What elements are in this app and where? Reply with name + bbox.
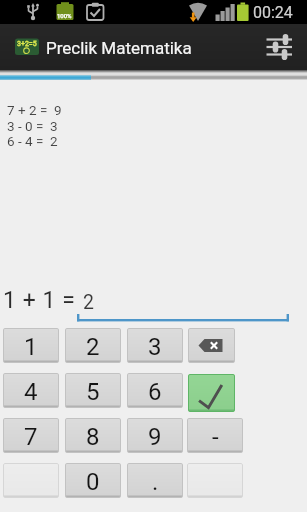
staticText: 3 xyxy=(148,333,162,361)
staticText: 7 xyxy=(24,423,38,451)
staticText: - xyxy=(212,423,219,451)
staticText: . xyxy=(152,468,159,496)
staticText: 3+2=5 xyxy=(17,40,37,48)
staticText: 00:24 xyxy=(253,3,293,22)
staticText: 3 - 0 = 3 xyxy=(7,118,58,134)
staticText: 1 xyxy=(24,333,38,361)
staticText: 100% xyxy=(57,12,72,19)
staticText: 0 xyxy=(86,468,100,496)
staticText: 2 xyxy=(83,291,94,314)
staticText: 5 xyxy=(86,378,100,406)
staticText: 7 + 2 = 9 xyxy=(7,102,62,118)
staticText: 6 - 4 = 2 xyxy=(7,133,58,149)
staticText: 8 xyxy=(86,423,100,451)
staticText: 9 xyxy=(148,423,162,451)
staticText: 2 xyxy=(86,333,100,361)
staticText: 1 + 1 = xyxy=(3,287,76,314)
staticText: 6 xyxy=(148,378,162,406)
staticText: 4 xyxy=(24,378,38,406)
staticText: Preclik Matematika xyxy=(46,38,192,58)
